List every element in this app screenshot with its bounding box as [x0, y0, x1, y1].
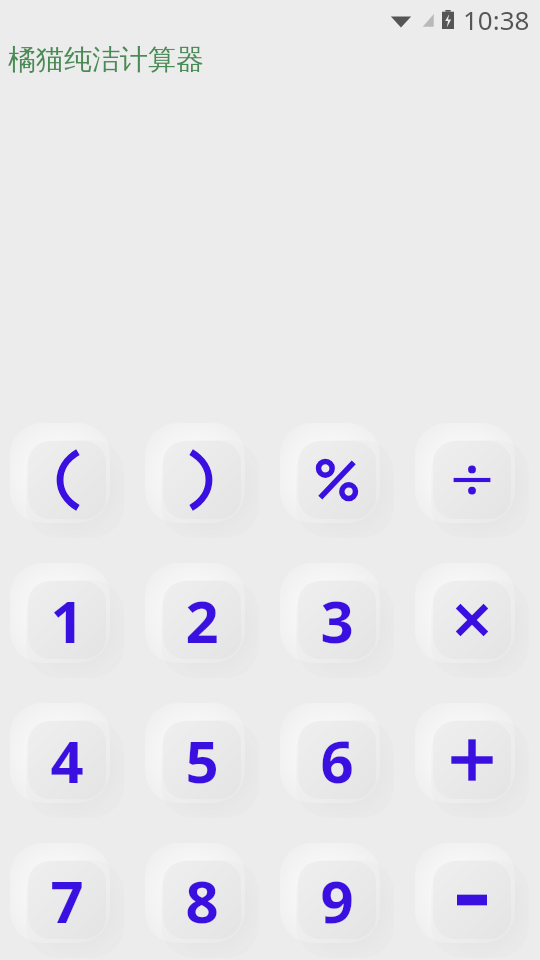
staticText: 6	[320, 721, 354, 799]
button[interactable]: Minus	[433, 861, 511, 939]
staticText: 7	[50, 861, 84, 939]
button[interactable]: 7	[28, 861, 106, 939]
button[interactable]: Plus	[433, 721, 511, 799]
button[interactable]: 2	[163, 581, 241, 659]
button[interactable]: 3	[298, 581, 376, 659]
button[interactable]: 8	[163, 861, 241, 939]
staticText: 1	[50, 581, 84, 659]
other: Divide	[449, 457, 495, 503]
button[interactable]: 1	[28, 581, 106, 659]
other: Percent	[315, 458, 359, 502]
staticText: 8	[185, 861, 219, 939]
button[interactable]: 6	[298, 721, 376, 799]
button[interactable]: Multiply	[433, 581, 511, 659]
other: Open parenthesis	[50, 451, 84, 509]
button[interactable]: 4	[28, 721, 106, 799]
other: Close parenthesis	[185, 451, 219, 509]
button[interactable]: Percent	[298, 441, 376, 519]
button[interactable]: Divide	[433, 441, 511, 519]
button[interactable]: 9	[298, 861, 376, 939]
staticText: 橘猫纯洁计算器	[8, 42, 204, 77]
other: Plus	[448, 736, 496, 784]
other: Minus	[457, 893, 487, 907]
staticText: 3	[320, 581, 354, 659]
button[interactable]: Open parenthesis	[28, 441, 106, 519]
button[interactable]: Close parenthesis	[163, 441, 241, 519]
staticText: 10:38	[463, 2, 530, 37]
staticText: 2	[185, 581, 219, 659]
staticText: 4	[50, 721, 84, 799]
other: Multiply	[451, 599, 493, 641]
button[interactable]: 5	[163, 721, 241, 799]
staticText: 5	[185, 721, 219, 799]
staticText: 9	[320, 861, 354, 939]
